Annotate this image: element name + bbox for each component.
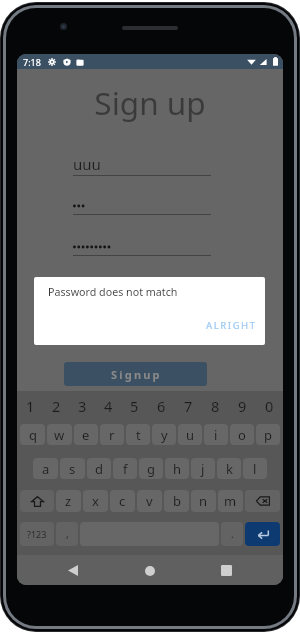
button[interactable]: o [230,424,254,445]
button[interactable]: 1 [17,393,43,419]
staticText: i [214,426,218,444]
button[interactable] [73,233,211,256]
staticText: u [186,426,195,444]
staticText: b [173,492,181,510]
button[interactable]: v [137,490,162,512]
button[interactable]: p [256,424,280,445]
staticText: f [123,460,128,478]
staticText: k [226,460,233,478]
button[interactable]: Signup [64,362,207,386]
button[interactable]: h [165,458,189,479]
staticText: Signup [111,367,162,382]
button[interactable]: 8 [202,393,229,419]
button[interactable]: Key [20,522,54,546]
button[interactable]: 0 [256,393,283,419]
staticText: o [238,426,246,444]
staticText: s [69,460,76,478]
staticText: Password does not match [48,285,178,300]
button[interactable]: 5 [121,393,148,419]
staticText: 5 [130,396,139,416]
staticText: h [173,460,182,478]
button[interactable]: f [113,458,137,479]
button[interactable]: k [217,458,241,479]
staticText: 0 [265,396,274,416]
button[interactable]: Key [20,490,54,512]
button[interactable]: 9 [229,393,256,419]
button[interactable]: i [204,424,228,445]
button[interactable]: t [126,424,150,445]
staticText: 4 [104,396,113,416]
button[interactable]: y [152,424,176,445]
staticText: m [224,492,237,510]
staticText: p [264,426,272,444]
staticText: 1 [26,396,35,416]
staticText: 3 [78,396,87,416]
button[interactable]: Home [135,556,164,585]
button[interactable] [73,192,211,215]
staticText: t [136,426,141,444]
button[interactable]: l [243,458,267,479]
staticText: 8 [211,396,220,416]
staticText: 9 [238,396,247,416]
staticText: 7:18 [23,56,41,68]
staticText: a [42,460,50,478]
button[interactable]: d [87,458,111,479]
staticText: Sign up [17,81,283,124]
button[interactable]: uuu [73,153,211,176]
button[interactable]: Recents [212,556,241,585]
button[interactable]: j [191,458,215,479]
staticText: c [119,492,126,510]
button[interactable]: u [178,424,202,445]
button[interactable]: n [191,490,216,512]
staticText: y [161,426,168,444]
button[interactable]: 4 [95,393,121,419]
staticText: , [66,527,69,541]
staticText: l [253,460,257,478]
staticText: uuu [73,154,101,174]
staticText: n [199,492,208,510]
button[interactable]: Key [245,490,280,512]
button[interactable]: x [83,490,108,512]
button[interactable]: e [74,424,98,445]
staticText: 7 [184,396,193,416]
staticText: d [95,460,103,478]
staticText: e [82,426,90,444]
button[interactable]: a [33,458,58,479]
button[interactable]: b [164,490,189,512]
button[interactable]: 2 [43,393,69,419]
button[interactable]: r [100,424,124,445]
staticText: ?123 [27,528,47,540]
staticText: q [29,426,37,444]
staticText: j [201,460,205,478]
staticText: z [65,492,72,510]
staticText: r [109,426,115,444]
button[interactable]: 6 [148,393,175,419]
staticText: g [147,460,155,478]
staticText: v [146,492,153,510]
staticText: ALRIGHT [206,319,257,332]
staticText: 6 [157,396,166,416]
button[interactable]: z [56,490,81,512]
button[interactable]: Back [58,556,87,585]
button[interactable]: 7 [175,393,202,419]
staticText: . [231,527,234,541]
staticText: x [92,492,99,510]
button[interactable]: 3 [69,393,95,419]
staticText: 2 [52,396,61,416]
button[interactable]: Enter [245,522,280,546]
button[interactable]: s [60,458,85,479]
button[interactable]: q [20,424,45,445]
button[interactable]: w [47,424,72,445]
button[interactable]: ALRIGHT [200,315,263,336]
staticText: w [54,426,65,444]
button[interactable]: g [139,458,163,479]
button[interactable]: m [218,490,243,512]
button[interactable]: c [110,490,135,512]
